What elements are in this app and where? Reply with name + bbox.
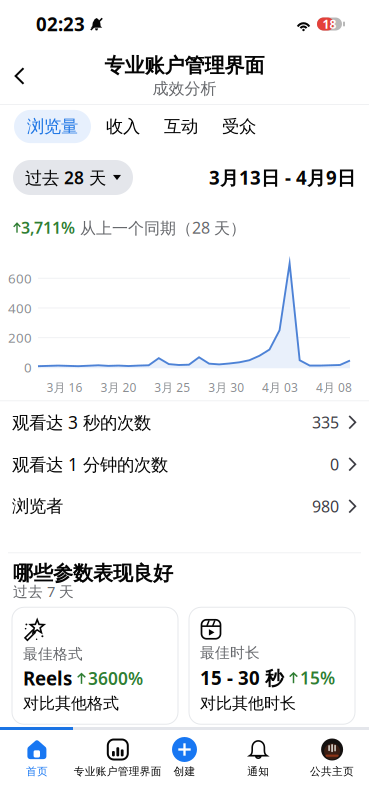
button[interactable]: 受众 bbox=[213, 110, 265, 143]
button[interactable]: 首页 bbox=[0, 738, 74, 778]
staticText: 3月13日 - 4月9日 bbox=[209, 165, 356, 190]
staticText: 专业账户管理界面 bbox=[104, 53, 264, 78]
staticText: 335 bbox=[312, 412, 339, 433]
staticText: 过去 28 天 bbox=[25, 166, 106, 189]
staticText: 受众 bbox=[222, 116, 256, 137]
staticText: 对比其他时长 bbox=[200, 694, 296, 713]
staticText: 4月 08 bbox=[316, 379, 352, 395]
button[interactable]: 互动 bbox=[155, 110, 207, 143]
staticText: 公共主页 bbox=[310, 765, 354, 778]
staticText: 专业账户管理界面 bbox=[74, 765, 162, 778]
staticText: 3月 20 bbox=[100, 379, 136, 395]
staticText: 15 - 30 秒 bbox=[200, 665, 284, 690]
button[interactable]: 返回 bbox=[0, 55, 39, 97]
staticText: 3月 30 bbox=[208, 379, 244, 395]
staticText: 15% bbox=[300, 666, 335, 689]
staticText: 哪些参数表现良好 bbox=[13, 561, 173, 586]
staticText: 最佳格式 bbox=[23, 645, 83, 663]
staticText: 600 bbox=[8, 269, 32, 287]
staticText: 收入 bbox=[106, 116, 140, 137]
staticText: 成效分析 bbox=[152, 79, 216, 99]
button[interactable]: 公共主页 bbox=[295, 738, 369, 778]
staticText: 过去 7 天 bbox=[13, 581, 74, 601]
staticText: 浏览量 bbox=[27, 116, 78, 137]
staticText: 通知 bbox=[247, 765, 269, 778]
staticText: 互动 bbox=[164, 116, 198, 137]
button[interactable]: 过去 28 天 bbox=[13, 160, 133, 195]
staticText: 最佳时长 bbox=[200, 644, 260, 662]
staticText: 从上一个同期（28 天） bbox=[75, 217, 246, 238]
staticText: 4月 03 bbox=[262, 379, 298, 395]
staticText: 18 bbox=[322, 16, 336, 32]
staticText: 0 bbox=[330, 454, 339, 475]
staticText: 0 bbox=[24, 358, 32, 376]
staticText: 首页 bbox=[26, 765, 48, 778]
staticText: 3月 16 bbox=[46, 379, 82, 395]
button[interactable]: 创建 bbox=[148, 738, 221, 778]
staticText: 980 bbox=[312, 496, 339, 517]
staticText: 浏览者 bbox=[12, 496, 63, 517]
staticText: 400 bbox=[8, 299, 32, 317]
staticText: 02:23 bbox=[36, 12, 85, 36]
button[interactable]: 专业账户管理界面 bbox=[74, 738, 148, 778]
staticText: 对比其他格式 bbox=[23, 694, 119, 713]
staticText: Reels bbox=[23, 666, 72, 691]
button[interactable]: 浏览者 bbox=[0, 485, 369, 527]
staticText: 观看达 1 分钟的次数 bbox=[12, 453, 168, 476]
staticText: 3月 25 bbox=[154, 379, 190, 395]
button[interactable]: 浏览量 bbox=[14, 110, 91, 143]
staticText: 观看达 3 秒的次数 bbox=[12, 411, 151, 434]
button[interactable]: 观看达 1 分钟的次数 bbox=[0, 443, 369, 485]
staticText: 200 bbox=[8, 329, 32, 346]
button[interactable]: 通知 bbox=[221, 738, 295, 778]
staticText: 创建 bbox=[173, 765, 195, 778]
button[interactable]: 观看达 3 秒的次数 bbox=[0, 401, 369, 443]
staticText: 3,711% bbox=[21, 217, 75, 238]
button[interactable]: 收入 bbox=[97, 110, 149, 143]
staticText: 3600% bbox=[88, 667, 143, 690]
